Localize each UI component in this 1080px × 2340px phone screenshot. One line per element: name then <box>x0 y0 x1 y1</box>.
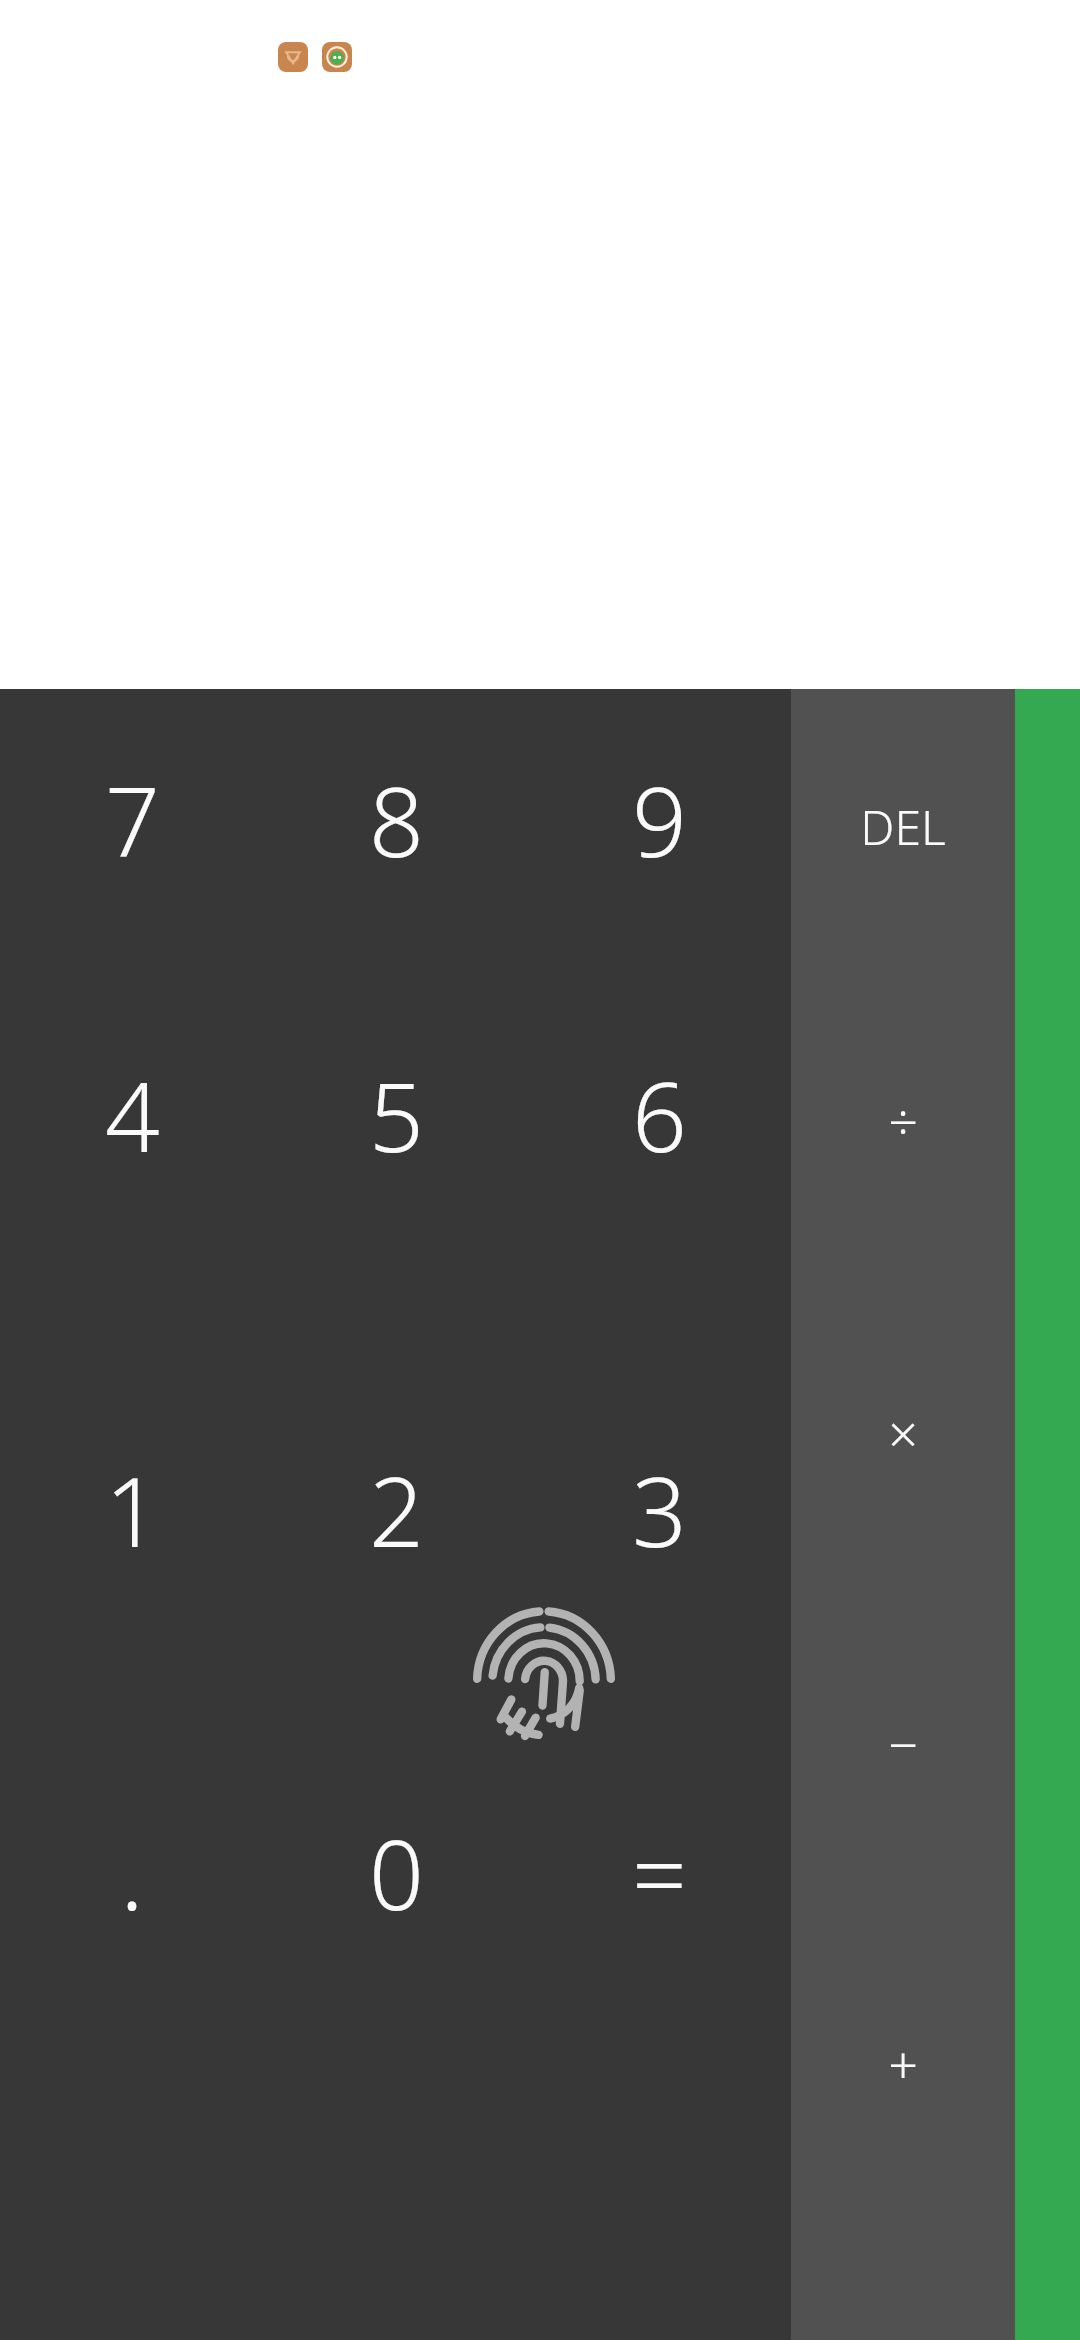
staticText: 6 <box>632 1049 687 1180</box>
staticText: 2 <box>369 1444 424 1575</box>
button[interactable]: + <box>791 1898 1015 2228</box>
button[interactable]: 0 <box>264 1707 528 2037</box>
button[interactable]: 4 <box>0 917 264 1312</box>
button[interactable]: 3 <box>528 1312 791 1707</box>
staticText: 7 <box>105 754 160 885</box>
button[interactable]: . <box>0 1707 264 2037</box>
button[interactable]: 6 <box>528 917 791 1312</box>
staticText: . <box>120 1807 144 1938</box>
staticText: ÷ <box>888 1085 918 1156</box>
staticText: 3 <box>632 1444 687 1575</box>
staticText: 1 <box>105 1444 160 1575</box>
staticText: 0 <box>369 1807 424 1938</box>
other: Notification <box>278 42 308 72</box>
staticText: × <box>888 1397 918 1468</box>
other: Message <box>322 42 352 72</box>
button[interactable]: 8 <box>264 721 528 917</box>
button[interactable]: 2 <box>264 1312 528 1707</box>
button[interactable]: × <box>791 1276 1015 1588</box>
staticText: 9 <box>632 754 687 885</box>
staticText: = <box>632 1807 687 1938</box>
button[interactable]: 9 <box>528 721 791 917</box>
staticText: 5 <box>369 1049 424 1180</box>
button[interactable]: 5 <box>264 917 528 1312</box>
button[interactable]: 7 <box>0 721 264 917</box>
button[interactable]: DEL <box>791 689 1015 964</box>
button[interactable]: Fingerprint unlock <box>468 1587 620 1739</box>
staticText: − <box>888 1708 918 1779</box>
staticText: 4 <box>105 1049 160 1180</box>
staticText: DEL <box>860 794 946 859</box>
button[interactable]: − <box>791 1588 1015 1898</box>
staticText: + <box>888 2028 918 2099</box>
button[interactable]: = <box>528 1707 791 2037</box>
button[interactable]: ÷ <box>791 964 1015 1276</box>
staticText: 8 <box>369 754 424 885</box>
button[interactable]: 1 <box>0 1312 264 1707</box>
